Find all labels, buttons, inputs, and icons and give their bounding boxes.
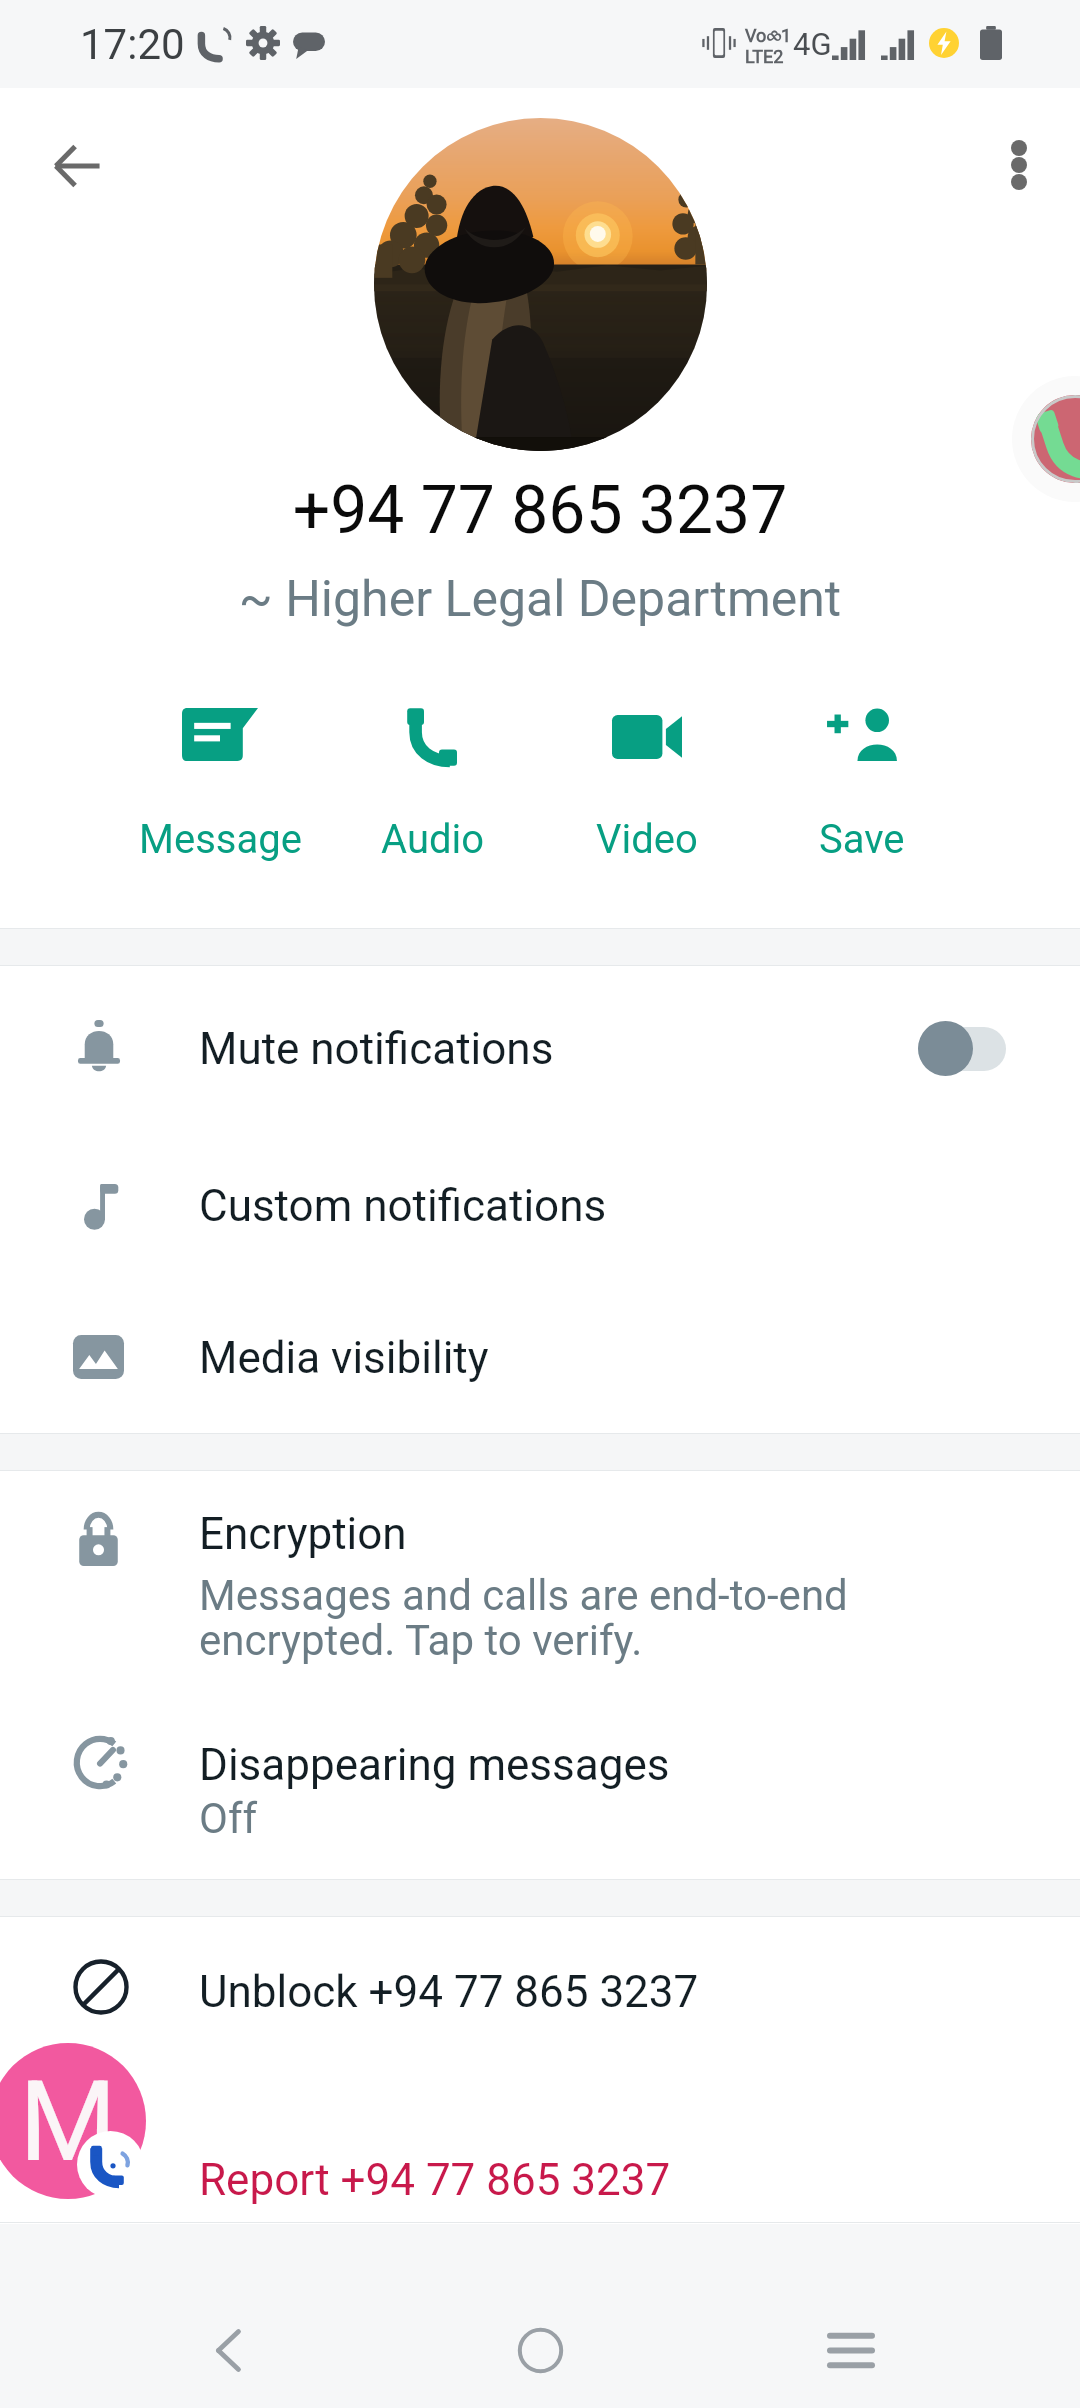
staticText: Media visibility xyxy=(199,1332,489,1384)
staticText: M xyxy=(19,2056,117,2187)
button[interactable]: Call recorder bubble xyxy=(0,2043,146,2199)
button[interactable] xyxy=(0,965,1080,1125)
button[interactable]: Home xyxy=(450,2277,630,2408)
staticText: Off xyxy=(199,1794,258,1843)
staticText: Vo⧝1 xyxy=(745,25,792,46)
button[interactable]: Call recorder xyxy=(1012,376,1080,502)
button[interactable] xyxy=(0,1465,1080,1695)
staticText: LTE2 xyxy=(745,46,784,67)
staticText: ~ Higher Legal Department xyxy=(0,570,1080,629)
button[interactable] xyxy=(0,1930,1080,2070)
button[interactable]: Video xyxy=(542,688,752,868)
button[interactable]: Back xyxy=(29,118,125,214)
staticText: Unblock +94 77 865 3237 xyxy=(199,1966,699,2018)
button[interactable]: Message xyxy=(115,688,325,868)
button[interactable] xyxy=(0,1700,1080,1890)
staticText: +94 77 865 3237 xyxy=(0,472,1080,549)
button[interactable]: Save xyxy=(757,688,967,868)
button[interactable]: Mute notifications toggle xyxy=(918,1021,1006,1076)
staticText: Mute notifications xyxy=(199,1023,554,1075)
button[interactable] xyxy=(0,1280,1080,1428)
staticText: 4G xyxy=(793,26,832,62)
button[interactable]: Back xyxy=(138,2277,318,2408)
staticText: Message xyxy=(139,816,302,863)
staticText: Report +94 77 865 3237 xyxy=(199,2154,671,2206)
staticText: 17:20 xyxy=(80,20,185,69)
button[interactable]: Profile photo xyxy=(374,118,707,451)
staticText: Custom notifications xyxy=(199,1180,607,1232)
button[interactable] xyxy=(0,1125,1080,1285)
staticText: Messages and calls are end-to-end encryp… xyxy=(199,1571,859,1665)
button[interactable]: Audio xyxy=(328,688,538,868)
staticText: Audio xyxy=(381,816,485,863)
button[interactable]: Record call xyxy=(77,2131,144,2198)
button[interactable]: Recent apps xyxy=(761,2277,941,2408)
button[interactable] xyxy=(0,2090,1080,2230)
staticText: Video xyxy=(596,816,698,863)
staticText: Encryption xyxy=(199,1508,407,1560)
staticText: Disappearing messages xyxy=(199,1739,670,1791)
staticText: Save xyxy=(819,816,905,863)
button[interactable]: More options xyxy=(971,117,1067,213)
